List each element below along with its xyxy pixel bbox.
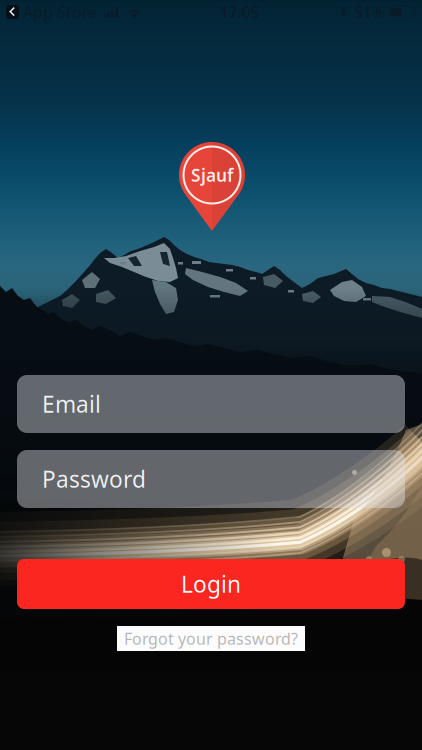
staticText: Email: [42, 389, 101, 419]
staticText: 51%: [354, 1, 385, 23]
staticText: Login: [181, 569, 241, 599]
staticText: App Store: [23, 1, 97, 23]
button[interactable]: Login: [17, 559, 405, 609]
staticText: Forgot your password?: [124, 628, 298, 649]
button[interactable]: Password: [17, 450, 405, 508]
staticText: 17:05: [219, 1, 259, 23]
staticText: Password: [42, 464, 146, 494]
button[interactable]: Forgot your password?: [117, 626, 305, 651]
staticText: Sjauf: [191, 163, 233, 186]
button[interactable]: Email: [17, 375, 405, 433]
